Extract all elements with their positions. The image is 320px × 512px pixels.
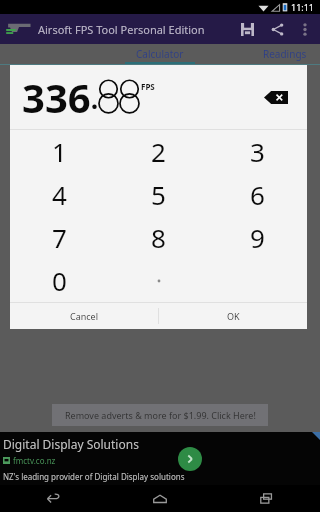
- staticText: 9: [250, 220, 265, 255]
- staticText: BB Weight: [62, 97, 111, 111]
- button[interactable]: Backspace: [259, 84, 293, 110]
- staticText: 8: [151, 220, 166, 255]
- button[interactable]: 2: [109, 130, 208, 173]
- button[interactable]: 4: [10, 173, 109, 216]
- staticText: 6: [250, 177, 265, 212]
- staticText: FPS: [141, 81, 155, 92]
- staticText: 7: [52, 220, 67, 255]
- staticText: 2: [151, 134, 166, 169]
- button[interactable]: 0: [10, 259, 109, 302]
- staticText: 0: [52, 263, 67, 298]
- staticText: NZ's leading provider of Digital Display…: [3, 471, 185, 482]
- staticText: 336: [22, 70, 91, 124]
- button[interactable]: More options: [292, 16, 318, 42]
- button[interactable]: 5: [109, 173, 208, 216]
- staticText: Calculator: [136, 47, 184, 61]
- staticText: Readings: [263, 47, 307, 61]
- button[interactable]: OK: [159, 303, 307, 329]
- button[interactable]: Cancel: [10, 303, 158, 329]
- staticText: 11:11: [291, 1, 315, 13]
- button[interactable]: Digital Display Solutions: [0, 432, 320, 485]
- button[interactable]: 7: [10, 216, 109, 259]
- staticText: Digital Display Solutions: [3, 436, 139, 452]
- staticText: Cancel: [70, 310, 99, 322]
- button[interactable]: 8: [109, 216, 208, 259]
- staticText: 5: [151, 177, 166, 212]
- button[interactable]: Share: [262, 14, 292, 44]
- button[interactable]: Calculator: [105, 44, 215, 64]
- staticText: 3: [250, 134, 265, 169]
- button[interactable]: 6: [208, 173, 307, 216]
- button[interactable]: Home: [106, 485, 213, 512]
- staticText: Remove adverts & more for $1.99. Click H…: [65, 409, 256, 421]
- button[interactable]: [109, 259, 208, 302]
- button[interactable]: 9: [208, 216, 307, 259]
- staticText: Airsoft FPS Tool Personal Edition: [38, 22, 205, 37]
- staticText: OK: [227, 310, 240, 322]
- button[interactable]: 3: [208, 130, 307, 173]
- button[interactable]: 1: [10, 130, 109, 173]
- staticText: 1: [52, 134, 67, 169]
- staticText: 4: [52, 177, 67, 212]
- button[interactable]: Back: [0, 485, 106, 512]
- button[interactable]: Readings: [250, 44, 320, 64]
- button[interactable]: Remove adverts & more for $1.99. Click H…: [52, 404, 268, 426]
- staticText: CHRONO INPUT: [60, 74, 131, 86]
- button[interactable]: Recents: [213, 485, 320, 512]
- button[interactable]: Open ad: [178, 447, 202, 471]
- staticText: fmctv.co.nz: [13, 455, 56, 466]
- button[interactable]: Save: [232, 14, 262, 44]
